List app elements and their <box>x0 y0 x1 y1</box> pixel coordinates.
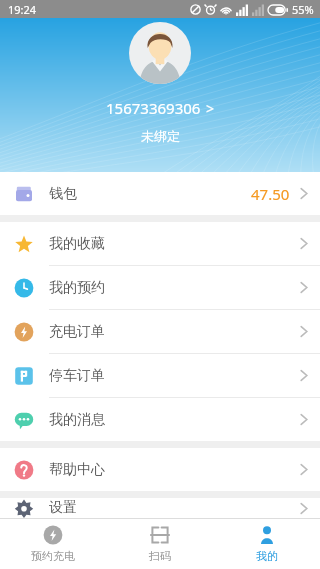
staticText: 帮助中心 <box>49 461 105 479</box>
button[interactable]: 我的消息 <box>0 398 320 441</box>
staticText: 未绑定 <box>141 128 180 144</box>
staticText: 15673369306 <box>106 98 201 118</box>
button[interactable]: 设置 <box>0 498 320 518</box>
staticText: 我的收藏 <box>49 235 105 253</box>
button[interactable]: 扫码 <box>106 519 213 569</box>
button[interactable]: 我的预约 <box>0 266 320 310</box>
button[interactable]: 钱包 <box>0 172 320 215</box>
staticText: 设置 <box>49 499 77 517</box>
staticText: 我的预约 <box>49 279 105 297</box>
staticText: 47.50 <box>251 184 290 204</box>
staticText: 充电订单 <box>49 323 105 341</box>
button[interactable]: 帮助中心 <box>0 448 320 491</box>
staticText: 扫码 <box>149 549 171 563</box>
button[interactable]: 我的收藏 <box>0 222 320 266</box>
staticText: 钱包 <box>49 185 77 203</box>
button[interactable]: 预约充电 <box>0 519 106 569</box>
staticText: > <box>206 99 215 118</box>
button[interactable]: 我的 <box>213 519 320 569</box>
button[interactable]: 停车订单 <box>0 354 320 398</box>
button[interactable]: Avatar <box>129 22 191 84</box>
staticText: 预约充电 <box>31 549 75 563</box>
staticText: 我的 <box>256 549 278 563</box>
staticText: 55% <box>292 2 314 17</box>
staticText: 我的消息 <box>49 411 105 429</box>
button[interactable]: 充电订单 <box>0 310 320 354</box>
staticText: 停车订单 <box>49 367 105 385</box>
button[interactable]: 15673369306 <box>98 96 223 120</box>
staticText: 19:24 <box>8 2 37 17</box>
